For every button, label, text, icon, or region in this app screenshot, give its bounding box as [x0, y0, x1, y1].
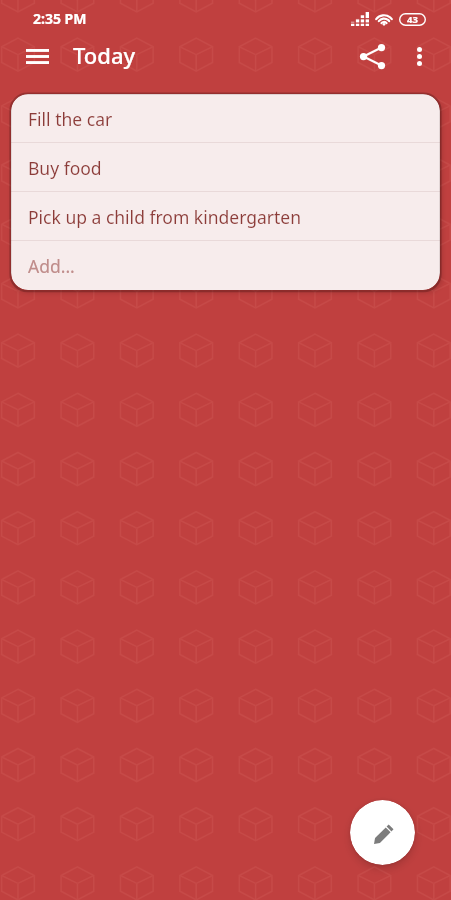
staticText: Pick up a child from kindergarten: [28, 205, 302, 229]
button[interactable]: Edit: [350, 800, 415, 865]
button[interactable]: Fill the car: [11, 94, 440, 143]
staticText: Buy food: [28, 156, 102, 180]
staticText: 2:35 PM: [33, 9, 87, 28]
button[interactable]: Buy food: [11, 143, 440, 192]
button[interactable]: Add...: [11, 241, 440, 290]
button[interactable]: Menu: [15, 38, 59, 74]
button[interactable]: Share: [350, 38, 394, 74]
staticText: 43: [407, 13, 418, 26]
staticText: Fill the car: [28, 107, 113, 131]
button[interactable]: More options: [397, 38, 441, 74]
staticText: Today: [73, 40, 136, 70]
staticText: Add...: [28, 254, 75, 278]
button[interactable]: Pick up a child from kindergarten: [11, 192, 440, 241]
